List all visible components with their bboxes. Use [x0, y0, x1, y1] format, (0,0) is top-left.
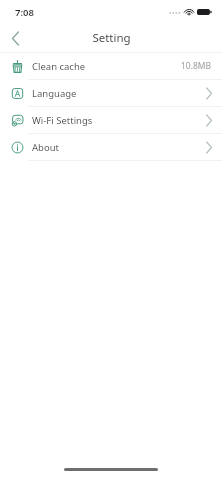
button[interactable]: Wi-Fi Settings — [0, 107, 222, 133]
button[interactable]: Clean cache — [0, 53, 222, 79]
staticText: Wi-Fi Settings — [32, 114, 93, 127]
button[interactable]: Language — [0, 80, 222, 106]
staticText: Clean cache — [32, 60, 86, 73]
staticText: Setting — [92, 30, 131, 46]
staticText: 7:08 — [15, 6, 34, 19]
staticText: About — [32, 141, 59, 154]
staticText: 10.8MB — [181, 60, 212, 72]
staticText: Language — [32, 87, 77, 100]
button[interactable]: Back — [0, 24, 30, 52]
button[interactable]: About — [0, 134, 222, 160]
